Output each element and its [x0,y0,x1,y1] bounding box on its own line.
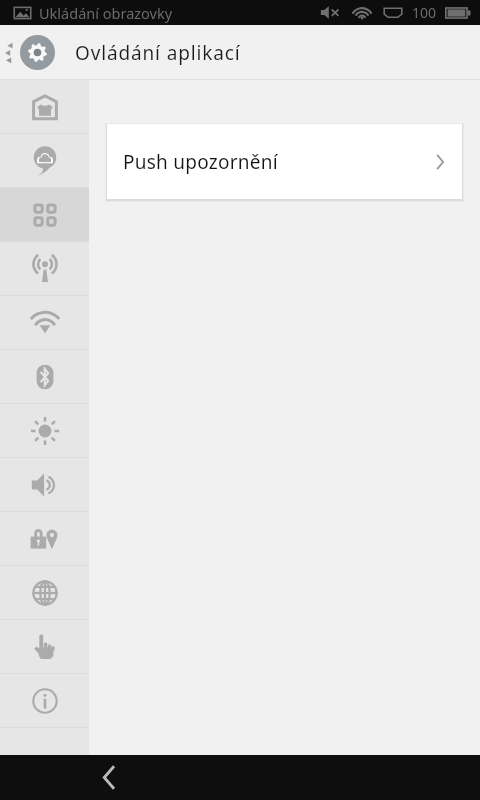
button[interactable]: Push upozornění [107,124,462,199]
button[interactable]: Privacy [0,512,89,566]
button[interactable]: Mobile network [0,242,89,296]
button[interactable]: Brightness [0,404,89,458]
staticText: Ukládání obrazovky [39,3,173,23]
button[interactable]: Gestures [0,620,89,674]
staticText: Push upozornění [123,149,278,175]
button[interactable]: About [0,674,89,728]
button[interactable]: Bluetooth [0,350,89,404]
staticText: Ovládání aplikací [75,40,241,66]
button[interactable]: Wi-Fi [0,296,89,350]
button[interactable]: Sound [0,458,89,512]
staticText: 100 [412,3,437,22]
button[interactable]: Back [80,755,138,800]
button[interactable]: Home [0,80,89,134]
button[interactable]: Network [0,566,89,620]
button[interactable]: Settings [20,35,55,70]
button[interactable]: Apps [0,188,89,242]
button[interactable]: Cloud [0,134,89,188]
